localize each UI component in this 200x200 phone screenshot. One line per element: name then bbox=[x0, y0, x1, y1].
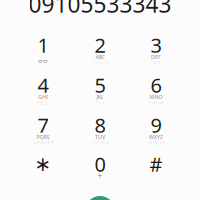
button[interactable]: 2 bbox=[73, 32, 127, 74]
staticText: ز ر ذ bbox=[96, 98, 104, 106]
staticText: ∗ bbox=[34, 152, 51, 176]
staticText: MNO bbox=[149, 93, 162, 101]
button[interactable]: 8 bbox=[73, 112, 127, 154]
button[interactable]: 1 bbox=[16, 32, 70, 74]
button[interactable]: 5 bbox=[73, 72, 127, 114]
staticText: JKL bbox=[96, 93, 103, 101]
staticText: TUV bbox=[95, 133, 105, 141]
button[interactable]: 6 bbox=[129, 72, 183, 114]
staticText: DEF bbox=[151, 53, 161, 61]
staticText: 4 bbox=[37, 71, 48, 99]
button[interactable]: # bbox=[129, 151, 183, 193]
staticText: GHI bbox=[38, 93, 48, 101]
staticText: # bbox=[149, 150, 162, 178]
staticText: WXYZ bbox=[149, 133, 163, 141]
button[interactable]: 4 bbox=[16, 72, 70, 114]
staticText: ق ف غ ع bbox=[92, 138, 108, 146]
staticText: + bbox=[97, 171, 102, 181]
button[interactable]: 7 bbox=[16, 112, 70, 154]
staticText: 9 bbox=[150, 111, 161, 139]
button[interactable]: Call bbox=[85, 196, 115, 200]
button[interactable]: 0 bbox=[73, 151, 127, 193]
button[interactable]: ∗ bbox=[16, 151, 70, 193]
staticText: 2 bbox=[94, 31, 105, 59]
staticText: 09105533343 bbox=[28, 0, 171, 19]
staticText: 8 bbox=[94, 111, 105, 139]
button[interactable]: 3 bbox=[129, 32, 183, 74]
staticText: 7 bbox=[37, 111, 48, 139]
staticText: ABC bbox=[95, 53, 104, 61]
staticText: ج ث bbox=[152, 58, 160, 66]
staticText: 6 bbox=[150, 71, 161, 99]
staticText: 0 bbox=[94, 150, 105, 178]
staticText: 3 bbox=[150, 31, 161, 59]
staticText: م ل گ ک bbox=[147, 138, 164, 146]
staticText: 1 bbox=[37, 31, 48, 59]
staticText: ت پ ب ا bbox=[92, 58, 108, 66]
staticText: د خ ح چ bbox=[36, 98, 50, 106]
staticText: PQRS bbox=[36, 133, 49, 141]
staticText: 5 bbox=[94, 71, 105, 99]
button[interactable]: 9 bbox=[129, 112, 183, 154]
staticText: ش س ژ bbox=[148, 98, 164, 106]
staticText: ظ ط ض ص bbox=[32, 138, 53, 146]
